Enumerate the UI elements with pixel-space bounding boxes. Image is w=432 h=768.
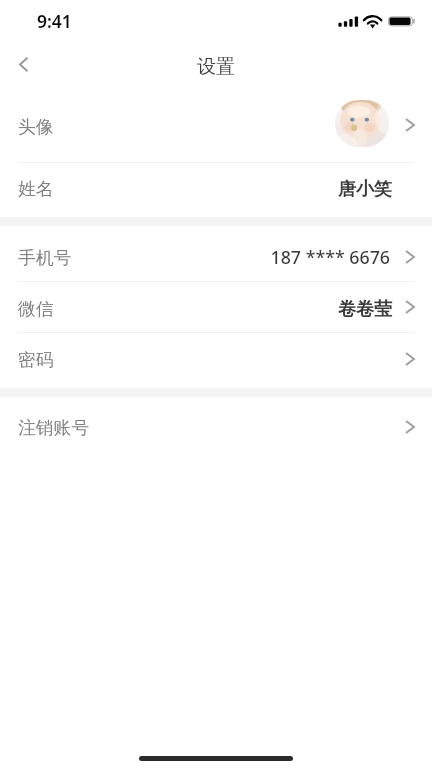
staticText: 设置 — [0, 55, 432, 79]
staticText: 姓名 — [18, 178, 54, 200]
staticText: 密码 — [18, 349, 54, 371]
button[interactable]: 注销账号 — [0, 397, 432, 452]
button[interactable]: 微信 — [0, 283, 432, 332]
staticText: 187 **** 6676 — [0, 245, 390, 269]
staticText: 9:41 — [37, 9, 72, 33]
button[interactable]: Back — [2, 42, 44, 86]
button[interactable]: 姓名 — [0, 163, 432, 217]
staticText: 注销账号 — [18, 417, 90, 439]
staticText: 唐小笑 — [0, 178, 392, 201]
staticText: 手机号 — [18, 247, 72, 269]
button[interactable]: 密码 — [0, 333, 432, 388]
staticText: 卷卷莹 — [0, 298, 392, 321]
staticText: 头像 — [18, 116, 54, 138]
button[interactable]: 头像 — [0, 88, 432, 162]
staticText: 微信 — [18, 298, 54, 320]
button[interactable]: 手机号 — [0, 226, 432, 282]
